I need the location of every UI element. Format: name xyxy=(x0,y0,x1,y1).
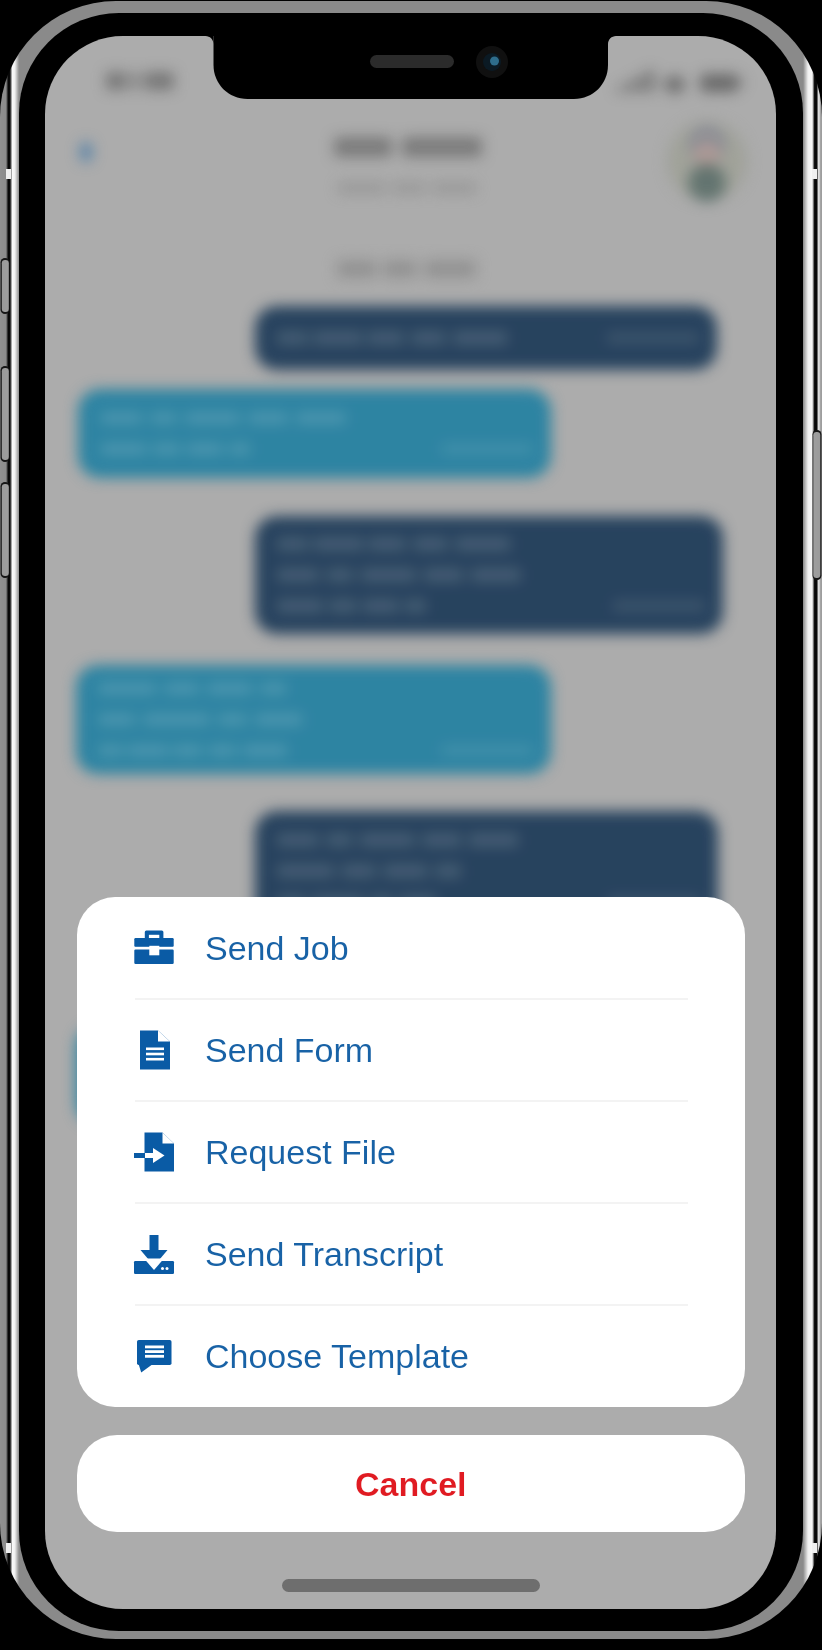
button[interactable]: Send Form xyxy=(77,999,745,1101)
staticText: Send Transcript xyxy=(205,1235,444,1273)
staticText: Send Form xyxy=(205,1031,374,1069)
button[interactable]: Cancel xyxy=(77,1435,745,1532)
button[interactable]: Send Job xyxy=(77,897,745,999)
staticText: Send Job xyxy=(205,929,349,967)
staticText: Cancel xyxy=(355,1465,467,1503)
button[interactable]: Request File xyxy=(77,1101,745,1203)
staticText: Choose Template xyxy=(205,1337,469,1375)
button[interactable]: Choose Template xyxy=(77,1305,745,1407)
button[interactable]: Send Transcript xyxy=(77,1203,745,1305)
staticText: Request File xyxy=(205,1133,396,1171)
